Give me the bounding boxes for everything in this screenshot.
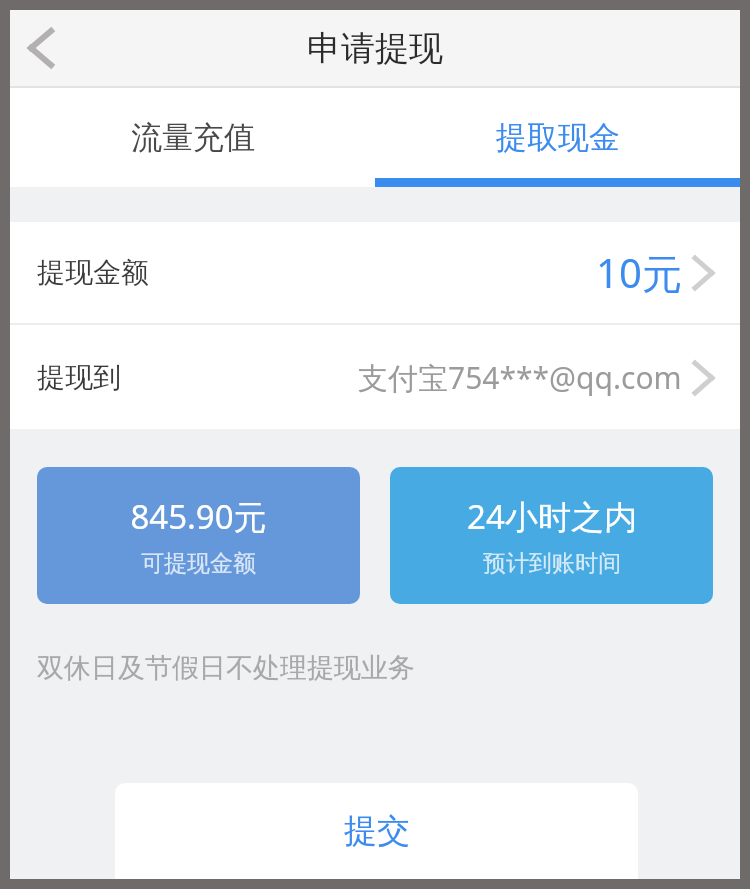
- staticText: 申请提现: [307, 27, 443, 70]
- button[interactable]: 24小时之内: [390, 467, 713, 604]
- button[interactable]: 845.90元: [37, 467, 360, 604]
- button[interactable]: 流量充值: [10, 88, 375, 187]
- staticText: 流量充值: [131, 118, 255, 157]
- staticText: 10元: [596, 245, 682, 300]
- staticText: 24小时之内: [467, 494, 637, 539]
- staticText: 提取现金: [496, 118, 620, 157]
- button[interactable]: 提现到: [10, 325, 740, 429]
- staticText: 预计到账时间: [483, 549, 621, 578]
- staticText: 支付宝754***@qq.com: [358, 357, 682, 398]
- button[interactable]: Back: [10, 17, 72, 79]
- staticText: 提现金额: [37, 255, 149, 290]
- staticText: 双休日及节假日不处理提现业务: [37, 651, 415, 685]
- button[interactable]: 提现金额: [10, 222, 740, 323]
- staticText: 845.90元: [130, 494, 267, 539]
- staticText: 提交: [344, 810, 410, 852]
- staticText: 提现到: [37, 360, 121, 395]
- button[interactable]: 提取现金: [375, 88, 740, 187]
- staticText: 可提现金额: [141, 549, 256, 578]
- button[interactable]: 提交: [115, 783, 638, 879]
